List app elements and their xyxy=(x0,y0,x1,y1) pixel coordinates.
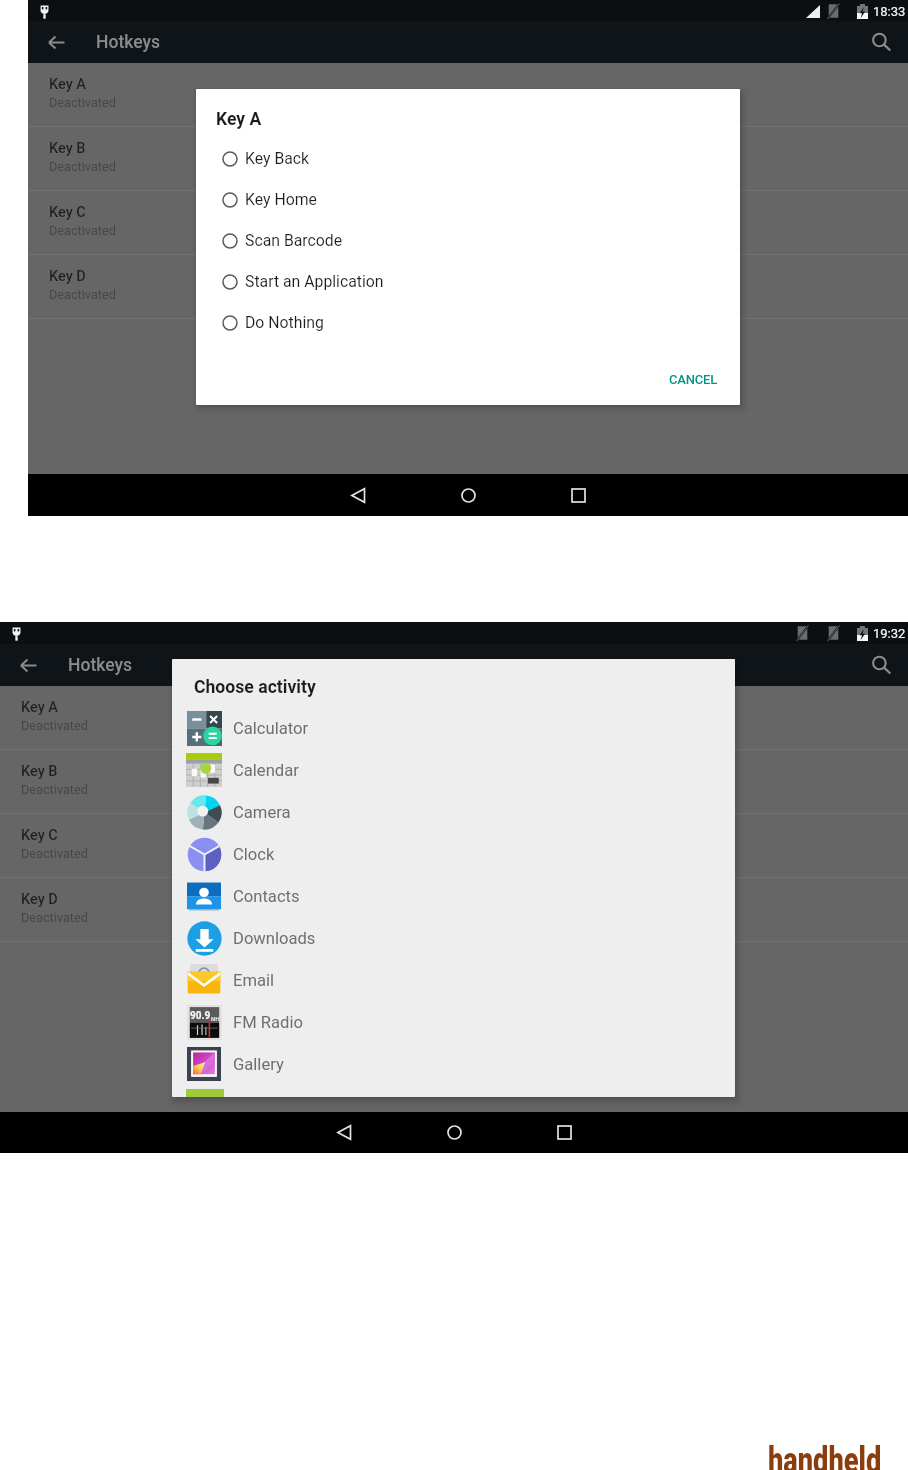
staticText: Start an Application xyxy=(245,272,384,291)
staticText: Deactivated xyxy=(21,846,88,861)
button[interactable]: Key A xyxy=(28,63,908,127)
button[interactable]: Start an Application xyxy=(196,261,740,302)
button[interactable]: Calendar xyxy=(172,749,735,791)
staticText: Deactivated xyxy=(21,910,88,925)
staticText: Key Back xyxy=(245,149,310,168)
staticText: Calculator xyxy=(233,719,309,738)
button[interactable]: Navigate up xyxy=(40,26,72,58)
staticText: CANCEL xyxy=(669,372,718,387)
staticText: Hotkeys xyxy=(96,32,161,53)
staticText: Key D xyxy=(49,268,86,285)
button[interactable]: Key Home xyxy=(196,179,740,220)
staticText: Email xyxy=(233,971,275,990)
button[interactable]: Do Nothing xyxy=(196,302,740,343)
staticText: Key B xyxy=(21,763,58,780)
button[interactable]: Scan Barcode xyxy=(196,220,740,261)
staticText: 19:32 xyxy=(873,626,906,641)
button[interactable]: 90.9 xyxy=(172,1001,735,1043)
staticText: Key C xyxy=(49,204,86,221)
button[interactable]: Key C xyxy=(28,191,908,255)
staticText: Key B xyxy=(49,140,86,157)
button[interactable]: CANCEL xyxy=(647,363,740,396)
button[interactable]: Home xyxy=(426,1112,482,1153)
button[interactable]: Gallery xyxy=(172,1043,735,1085)
staticText: Contacts xyxy=(233,887,300,906)
button[interactable]: Key D xyxy=(28,255,908,319)
button[interactable]: Calculator xyxy=(172,707,735,749)
staticText: MHz xyxy=(211,1016,222,1022)
staticText: Choose activity xyxy=(194,677,316,698)
staticText: Calendar xyxy=(233,761,299,780)
staticText: Do Nothing xyxy=(245,313,324,332)
staticText: Key A xyxy=(21,699,58,716)
staticText: Key A xyxy=(49,76,86,93)
staticText: Deactivated xyxy=(49,287,116,302)
staticText: 18:33 xyxy=(873,4,906,19)
staticText: Deactivated xyxy=(21,718,88,733)
staticText: Camera xyxy=(233,803,291,822)
button[interactable]: Key Back xyxy=(196,138,740,179)
staticText: Clock xyxy=(233,845,275,864)
button[interactable]: Recent apps xyxy=(550,474,606,516)
button[interactable]: Camera xyxy=(172,791,735,833)
button[interactable]: Key C xyxy=(0,814,908,878)
staticText: Scan Barcode xyxy=(245,231,343,250)
staticText: Deactivated xyxy=(21,782,88,797)
button[interactable]: Key B xyxy=(0,750,908,814)
button[interactable]: Email xyxy=(172,959,735,1001)
button[interactable]: Contacts xyxy=(172,875,735,917)
staticText: Key C xyxy=(21,827,58,844)
button[interactable]: Key A xyxy=(0,686,908,750)
staticText: handheld xyxy=(768,1440,882,1470)
staticText: Gallery xyxy=(233,1055,284,1074)
button[interactable]: Clock xyxy=(172,833,735,875)
button[interactable]: Search xyxy=(865,26,897,58)
staticText: 90.9 xyxy=(190,1010,211,1022)
button[interactable]: Search xyxy=(865,649,897,681)
staticText: Key D xyxy=(21,891,58,908)
button[interactable]: Back xyxy=(316,1112,372,1153)
staticText: Deactivated xyxy=(49,95,116,110)
staticText: FM Radio xyxy=(233,1013,303,1032)
button[interactable]: Back xyxy=(330,474,386,516)
button[interactable]: Downloads xyxy=(172,917,735,959)
button[interactable]: Key D xyxy=(0,878,908,942)
button[interactable]: Key B xyxy=(28,127,908,191)
staticText: Deactivated xyxy=(49,223,116,238)
button[interactable]: Navigate up xyxy=(12,649,44,681)
button[interactable]: Recent apps xyxy=(536,1112,592,1153)
staticText: Hotkeys xyxy=(68,655,133,676)
button[interactable]: Home xyxy=(440,474,496,516)
staticText: Deactivated xyxy=(49,159,116,174)
staticText: Downloads xyxy=(233,929,316,948)
staticText: Key Home xyxy=(245,190,317,209)
staticText: Key A xyxy=(216,109,262,130)
